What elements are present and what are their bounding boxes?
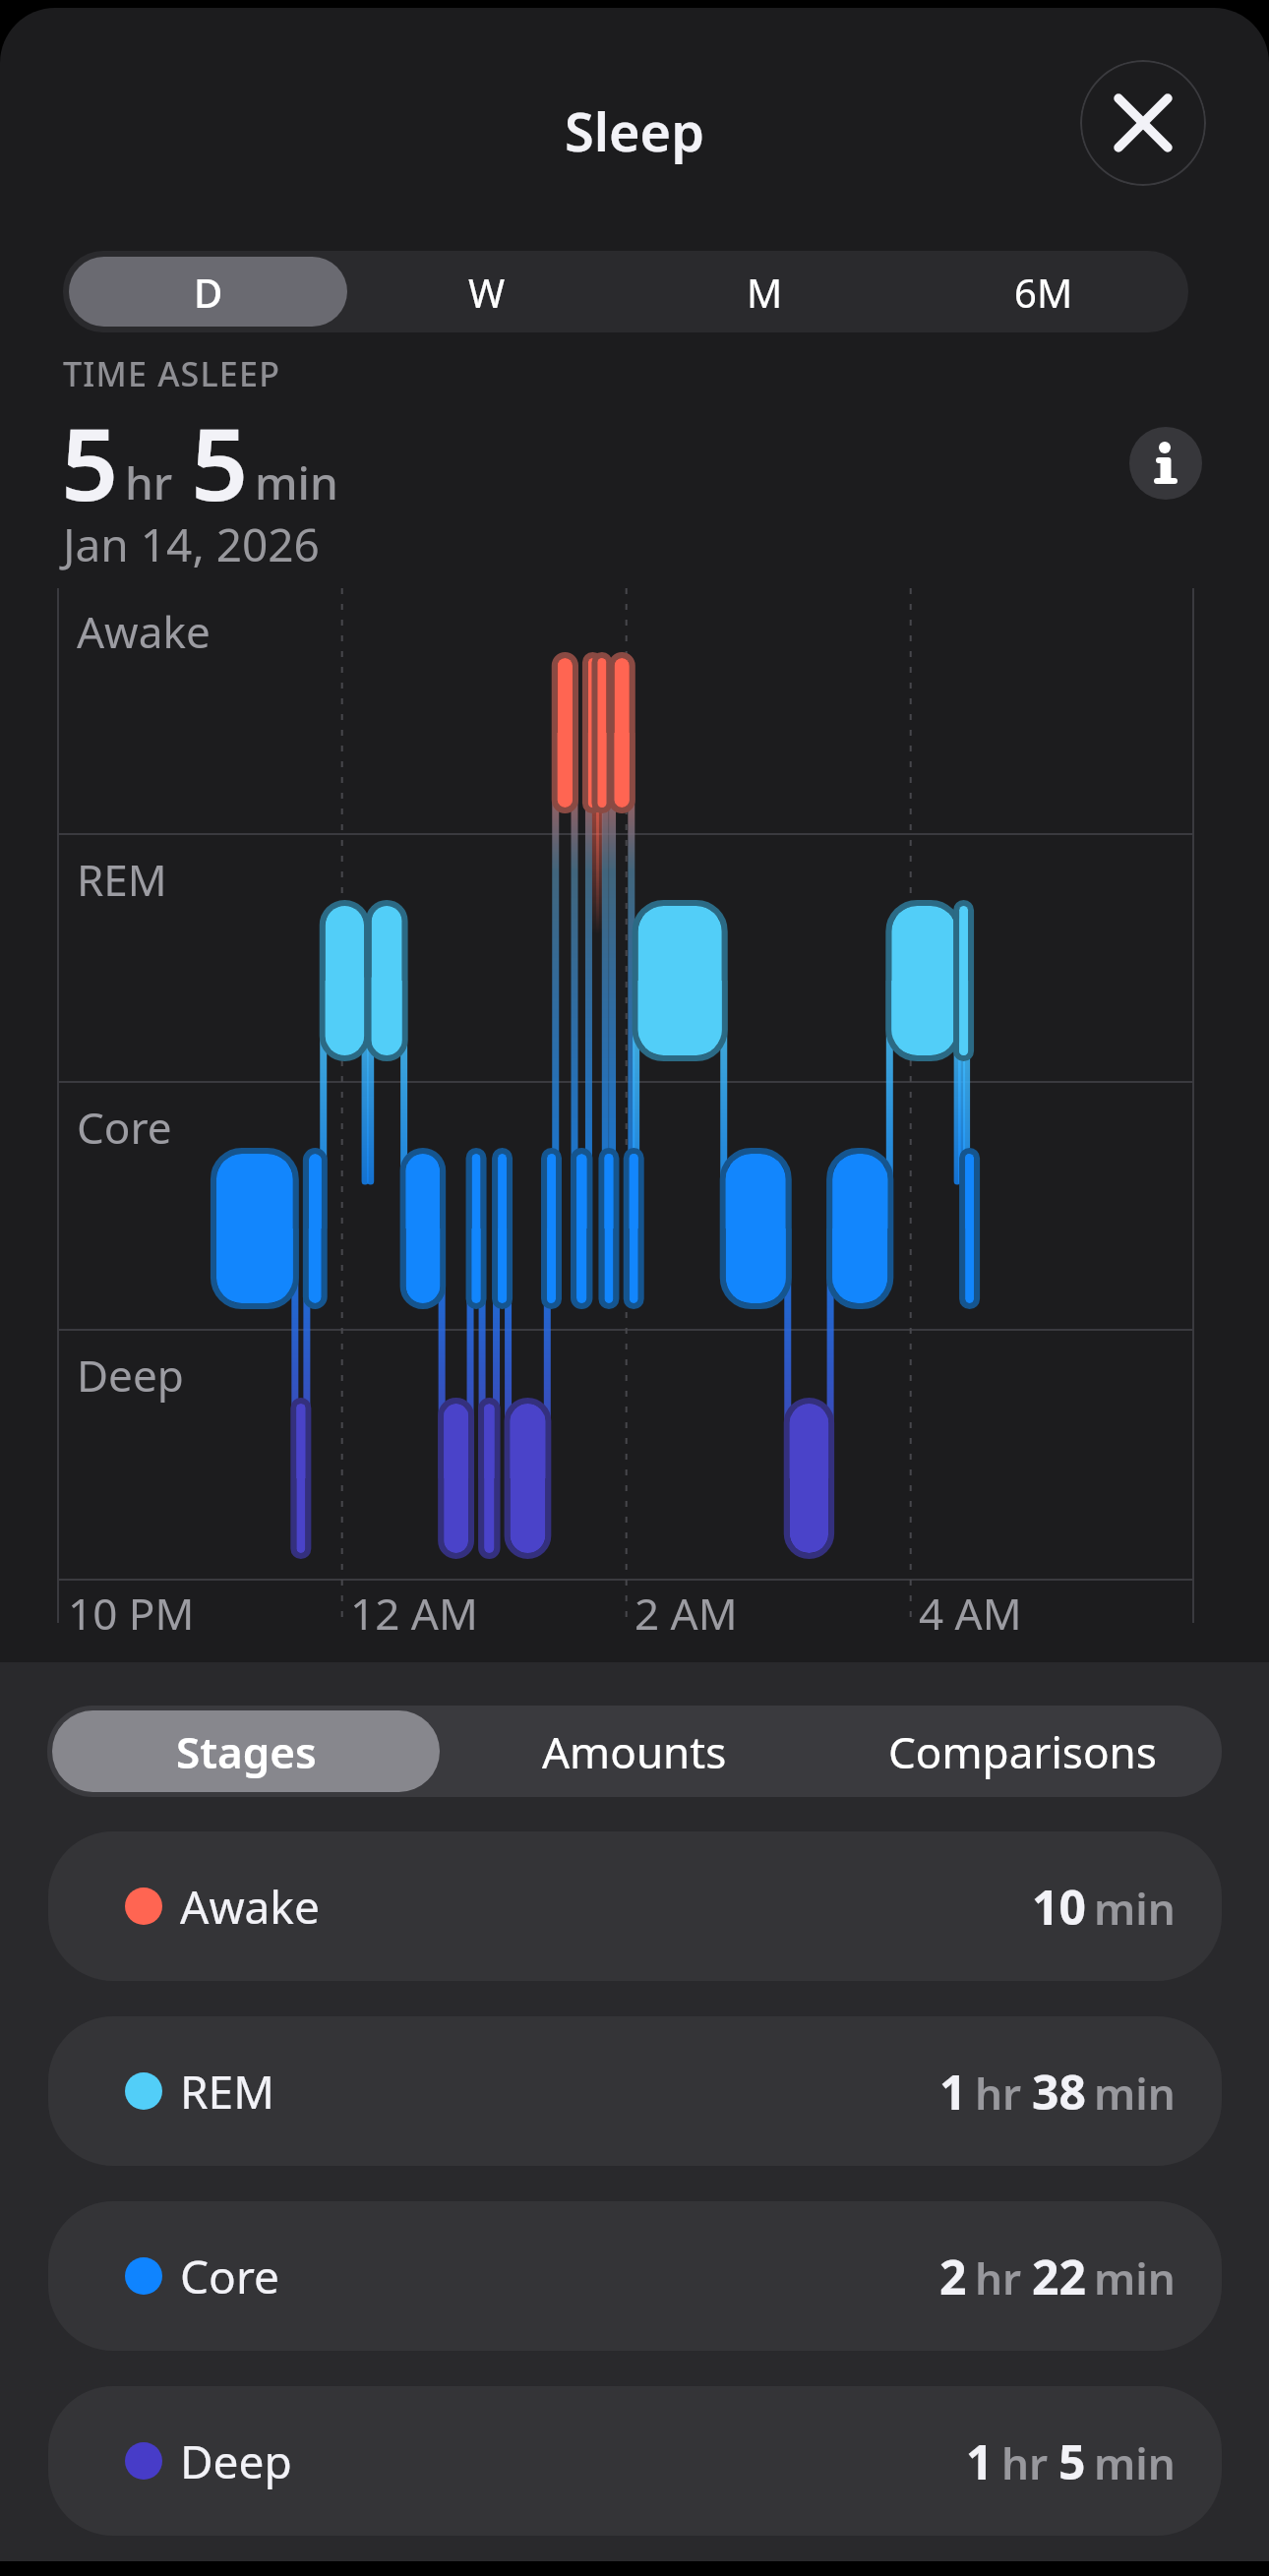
- staticText: Jan 14, 2026: [63, 513, 320, 575]
- staticText: Core: [180, 2246, 279, 2307]
- staticText: min: [1094, 2433, 1176, 2492]
- staticText: M: [747, 266, 783, 319]
- staticText: Amounts: [542, 1722, 727, 1781]
- button[interactable]: D: [69, 257, 347, 327]
- staticText: Awake: [180, 1876, 320, 1938]
- staticText: hr: [975, 2248, 1022, 2307]
- staticText: 5: [191, 393, 249, 530]
- staticText: min: [1094, 2248, 1176, 2307]
- staticText: 1: [939, 2060, 967, 2124]
- button[interactable]: M: [626, 257, 904, 327]
- button[interactable]: Amounts: [440, 1710, 828, 1792]
- staticText: W: [468, 266, 506, 319]
- staticText: 2 AM: [634, 1584, 738, 1643]
- button[interactable]: 6M: [904, 257, 1182, 327]
- staticText: Sleep: [565, 94, 704, 167]
- staticText: TIME ASLEEP: [63, 351, 281, 396]
- staticText: 12 AM: [350, 1584, 478, 1643]
- staticText: 10 PM: [68, 1584, 195, 1643]
- staticText: min: [1094, 2064, 1176, 2123]
- staticText: Comparisons: [888, 1722, 1157, 1781]
- staticText: min: [1094, 1879, 1176, 1938]
- staticText: Stages: [176, 1722, 317, 1781]
- button[interactable]: Core: [48, 2201, 1222, 2351]
- staticText: 10: [1032, 1875, 1086, 1939]
- staticText: 2: [939, 2245, 967, 2308]
- staticText: Awake: [77, 602, 211, 661]
- staticText: Deep: [77, 1346, 184, 1405]
- staticText: 1: [966, 2429, 994, 2493]
- staticText: min: [255, 451, 338, 513]
- staticText: 38: [1032, 2060, 1086, 2124]
- button[interactable]: W: [347, 257, 626, 327]
- button[interactable]: Stages: [52, 1710, 440, 1792]
- staticText: 22: [1032, 2245, 1086, 2308]
- staticText: Deep: [180, 2430, 292, 2492]
- button[interactable]: Comparisons: [828, 1710, 1217, 1792]
- button[interactable]: REM: [48, 2016, 1222, 2166]
- button[interactable]: [1129, 427, 1202, 500]
- button[interactable]: Deep: [48, 2386, 1222, 2536]
- staticText: hr: [1001, 2433, 1049, 2492]
- staticText: 5: [61, 393, 119, 530]
- staticText: D: [194, 266, 223, 319]
- button[interactable]: Awake: [48, 1831, 1222, 1981]
- staticText: 4 AM: [919, 1584, 1022, 1643]
- staticText: 5: [1058, 2429, 1086, 2493]
- staticText: hr: [975, 2064, 1022, 2123]
- button[interactable]: [1080, 60, 1206, 186]
- staticText: REM: [180, 2061, 274, 2123]
- staticText: Core: [77, 1098, 172, 1157]
- staticText: hr: [125, 451, 173, 513]
- staticText: REM: [77, 850, 167, 909]
- staticText: 6M: [1014, 266, 1073, 319]
